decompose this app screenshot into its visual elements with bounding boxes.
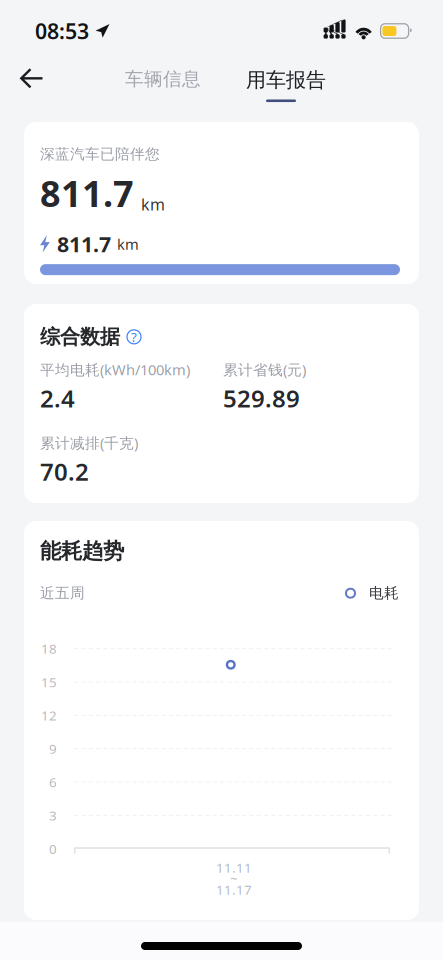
staticText: 能耗趋势	[40, 538, 124, 564]
staticText: 11.11	[216, 859, 252, 876]
staticText: 15	[41, 673, 57, 691]
button[interactable]: Info	[120, 324, 141, 350]
staticText: 综合数据	[40, 325, 120, 349]
staticText: 车辆信息	[125, 67, 201, 90]
staticText: 811.7	[40, 169, 134, 217]
staticText: ?	[131, 328, 137, 346]
staticText: ~	[230, 870, 238, 887]
staticText: 9	[49, 740, 57, 757]
staticText: km	[117, 234, 139, 254]
staticText: 2.4	[40, 382, 75, 414]
staticText: 累计减排(千克)	[40, 433, 138, 453]
staticText: 用车报告	[246, 68, 326, 92]
staticText: 6	[49, 773, 57, 791]
staticText: 近五周	[40, 584, 85, 602]
button[interactable]: 车辆信息	[115, 56, 211, 102]
staticText: 深蓝汽车已陪伴您	[40, 145, 160, 163]
staticText: 12	[41, 706, 57, 724]
staticText: km	[141, 194, 165, 215]
staticText: 累计省钱(元)	[223, 360, 306, 379]
staticText: 811.7	[57, 230, 111, 258]
staticText: 电耗	[369, 584, 399, 602]
button[interactable]: Back	[0, 56, 60, 101]
button[interactable]: 用车报告	[238, 56, 334, 102]
staticText: 70.2	[40, 455, 89, 487]
staticText: 529.89	[223, 382, 300, 414]
staticText: 18	[41, 640, 57, 657]
staticText: 0	[49, 840, 57, 858]
staticText: 11.17	[216, 881, 252, 898]
staticText: 平均电耗(kWh/100km)	[40, 360, 190, 379]
staticText: 08:53	[35, 17, 89, 45]
staticText: 3	[49, 806, 57, 824]
